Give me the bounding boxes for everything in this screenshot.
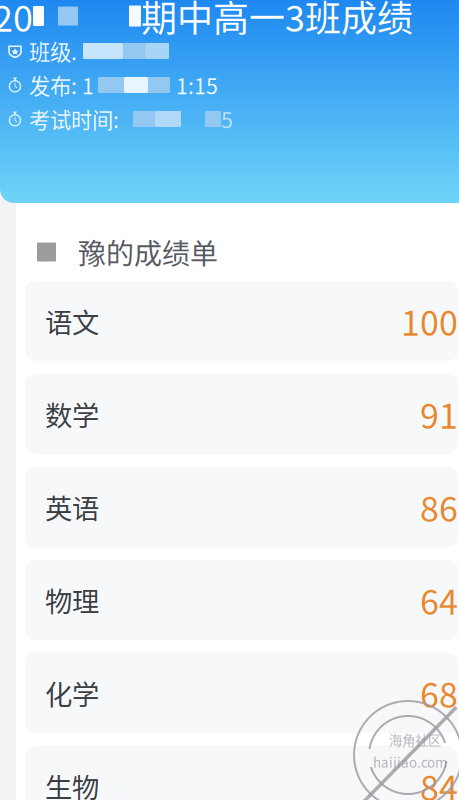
staticText: 生物: [45, 766, 99, 800]
staticText: 5: [221, 104, 233, 134]
staticText: 68: [420, 668, 458, 718]
button[interactable]: 英语: [25, 467, 458, 547]
staticText: 豫的成绩单: [78, 232, 218, 272]
button[interactable]: 数学: [25, 374, 458, 454]
button[interactable]: 语文: [25, 281, 458, 361]
staticText: 英语: [45, 487, 99, 527]
staticText: 考试时间:: [29, 104, 119, 134]
staticText: 91: [420, 389, 458, 439]
staticText: 数学: [45, 394, 99, 434]
staticText: 84: [420, 761, 458, 800]
staticText: 海角社区: [389, 730, 441, 749]
staticText: 86: [420, 482, 458, 532]
staticText: 物理: [45, 580, 99, 620]
button[interactable]: 化学: [25, 653, 458, 733]
staticText: 化学: [45, 673, 99, 713]
staticText: haijiao.com: [373, 752, 447, 772]
staticText: 100: [401, 296, 458, 346]
staticText: 1:15: [176, 70, 218, 100]
staticText: 20: [0, 0, 33, 42]
staticText: 班级.: [29, 36, 77, 66]
staticText: 发布: 1: [29, 70, 94, 100]
staticText: 64: [420, 575, 458, 625]
staticText: 期中高一3班成绩: [141, 0, 413, 42]
button[interactable]: 生物: [25, 746, 458, 800]
button[interactable]: 物理: [25, 560, 458, 640]
staticText: 语文: [45, 301, 99, 341]
